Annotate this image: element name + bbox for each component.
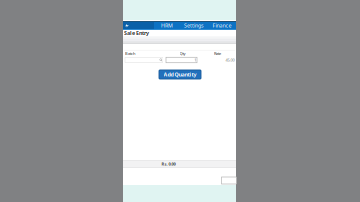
button[interactable]: Quantity (166, 57, 197, 63)
button[interactable]: Search batch (125, 57, 163, 62)
staticText: Rs. 0.00 (161, 161, 175, 167)
button[interactable]: Settings (180, 22, 208, 29)
button[interactable]: Footer input (221, 177, 236, 184)
button[interactable]: Finance (208, 22, 236, 29)
staticText: 45.00 (225, 57, 234, 63)
button[interactable]: Home (123, 22, 154, 29)
button[interactable]: Add Quantity (159, 70, 201, 79)
staticText: Sale Entry (124, 29, 149, 37)
staticText: Qty (179, 51, 185, 56)
button[interactable]: HRM (154, 22, 180, 29)
staticText: Settings (184, 22, 204, 29)
staticText: HRM (161, 22, 173, 29)
staticText: Finance (212, 22, 231, 29)
staticText: Batch (125, 51, 135, 56)
staticText: Rate (214, 51, 221, 56)
staticText: 1 (194, 57, 196, 63)
staticText: Add Quantity (163, 71, 196, 78)
